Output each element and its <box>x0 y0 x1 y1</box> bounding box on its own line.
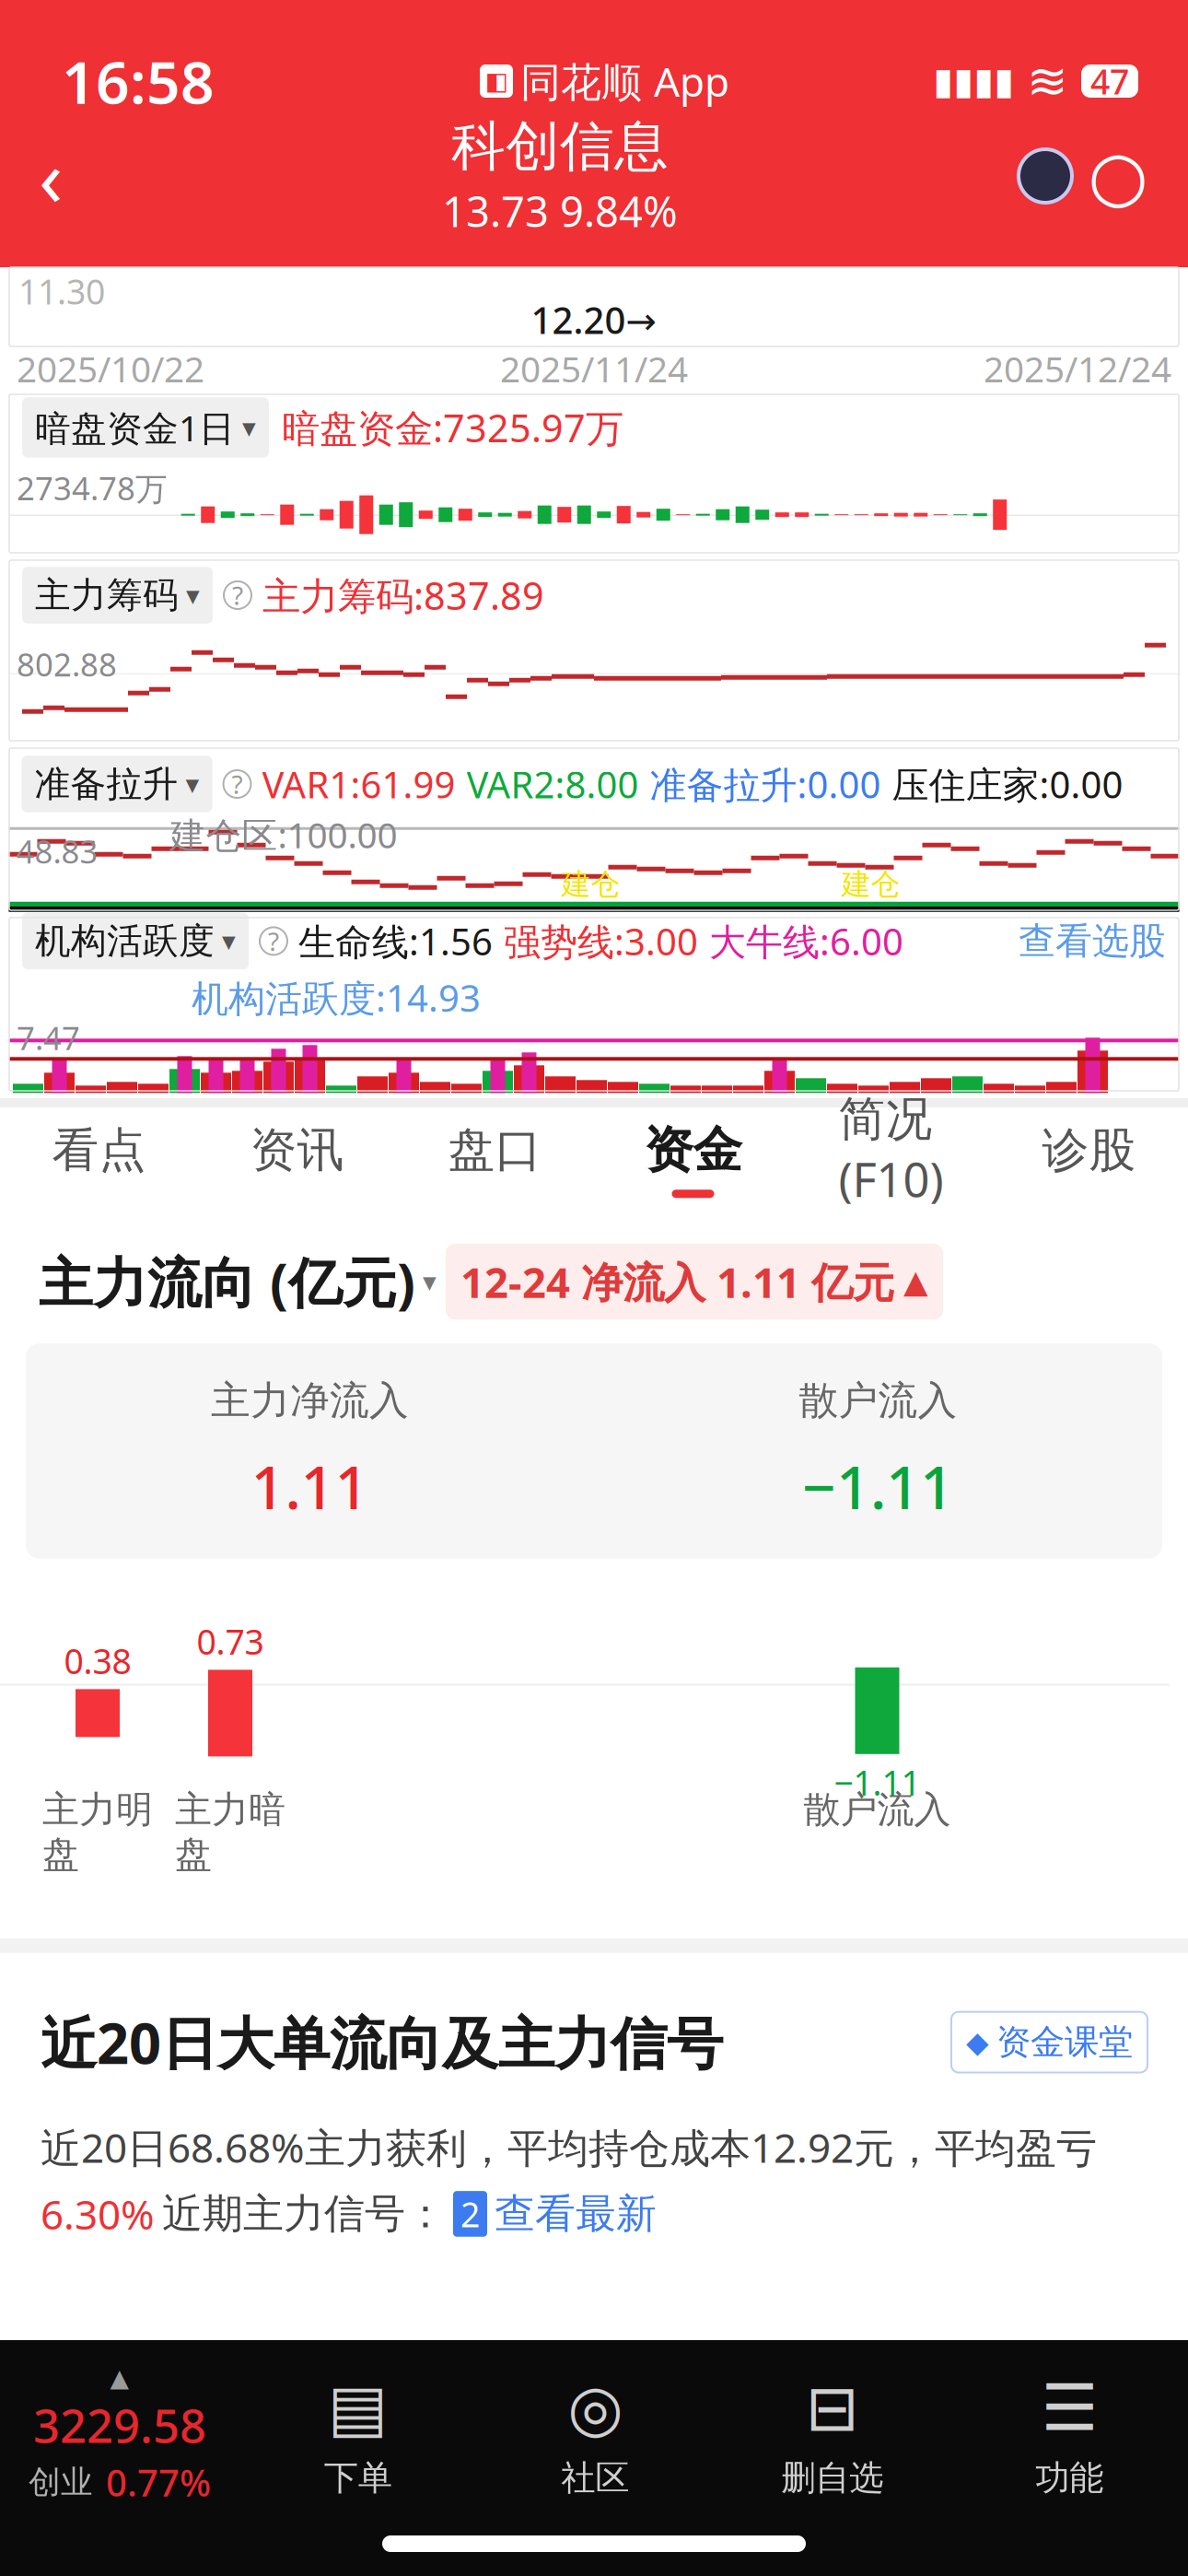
staticText: ‹ <box>39 124 63 228</box>
staticText: ▾ <box>186 769 199 799</box>
button[interactable]: Back <box>0 125 101 227</box>
staticText: 生命线:1.56 <box>298 917 493 966</box>
button[interactable]: 盘口 <box>396 1109 594 1209</box>
button[interactable]: 查看最新 <box>495 2189 657 2239</box>
button[interactable]: 主力流向 (亿元) <box>39 1246 437 1317</box>
staticText: 16:58 <box>62 42 215 120</box>
staticText: 11.30 <box>18 268 105 314</box>
button[interactable]: 暗盘资金1日 <box>22 397 269 458</box>
button[interactable]: Search <box>1072 130 1164 222</box>
staticText: ◧ <box>485 67 508 95</box>
staticText: 下单 <box>324 2457 392 2499</box>
staticText: 简况(F10) <box>839 1091 943 1210</box>
button[interactable]: 诊股 <box>990 1109 1188 1209</box>
staticText: 0.77% <box>106 2458 211 2507</box>
staticText: 建仓 <box>561 866 620 902</box>
staticText: 1.11 <box>251 1447 369 1525</box>
staticText: 盘口 <box>448 1122 542 1179</box>
button[interactable]: ☰ <box>951 2372 1188 2499</box>
staticText: 12-24 净流入 1.11 亿元 <box>460 1254 894 1309</box>
staticText: ◆ <box>966 2025 989 2059</box>
staticText: ○ <box>1088 137 1148 215</box>
staticText: ▲ <box>903 1263 928 1300</box>
staticText: 主力暗盘 <box>175 1787 285 1878</box>
staticText: 资讯 <box>250 1122 344 1179</box>
staticText: 近20日大单流向及主力信号 <box>41 2005 723 2080</box>
staticText: 删自选 <box>781 2457 883 2499</box>
staticText: 大牛线:6.00 <box>709 917 903 966</box>
staticText: 2025/12/24 <box>984 345 1171 392</box>
staticText: 近期主力信号： <box>162 2189 446 2239</box>
staticText: ? <box>232 767 243 801</box>
button[interactable]: Assistant <box>1019 149 1072 203</box>
staticText: 准备拉升 <box>35 762 178 806</box>
staticText: 主力流向 (亿元) <box>39 1246 415 1317</box>
staticText: 诊股 <box>1042 1122 1136 1179</box>
button[interactable]: 机构活跃度 <box>22 913 249 969</box>
staticText: 机构活跃度:14.93 <box>192 973 481 1022</box>
staticText: 查看选股 <box>1019 918 1166 964</box>
staticText: 散户流入 <box>799 1377 957 1425</box>
staticText: 48.83 <box>16 830 98 872</box>
staticText: 准备拉升:0.00 <box>650 760 881 808</box>
staticText: 查看最新 <box>495 2189 657 2239</box>
staticText: 建仓 <box>841 866 900 902</box>
staticText: ▾ <box>242 412 256 443</box>
staticText: 主力筹码 <box>35 573 179 617</box>
staticText: 13.73 9.84% <box>442 183 678 239</box>
staticText: 3229.58 <box>33 2394 206 2456</box>
staticText: ≋ <box>1027 53 1068 109</box>
staticText: 0.38 <box>64 1638 131 1684</box>
staticText: 主力明盘 <box>42 1787 153 1878</box>
staticText: 2 <box>460 2191 480 2237</box>
staticText: ? <box>268 924 279 958</box>
button[interactable]: 资金 <box>594 1107 792 1211</box>
staticText: 47 <box>1090 58 1129 104</box>
staticText: 暗盘资金:7325.97万 <box>282 402 623 453</box>
staticText: 2025/10/22 <box>17 345 204 392</box>
staticText: ▾ <box>186 580 200 611</box>
button[interactable]: 准备拉升 <box>22 756 212 812</box>
staticText: 科创信息 <box>451 113 669 180</box>
staticText: ▾ <box>423 1266 437 1297</box>
button[interactable]: ▤ <box>239 2372 477 2499</box>
button[interactable]: 资讯 <box>198 1109 396 1209</box>
staticText: ◎ <box>567 2372 623 2444</box>
staticText: 6.30% <box>41 2187 155 2241</box>
button[interactable]: ⊟ <box>714 2372 951 2499</box>
staticText: 机构活跃度 <box>35 919 215 963</box>
staticText: VAR1:61.99 <box>262 760 455 808</box>
button[interactable]: 12-24 净流入 1.11 亿元 <box>446 1244 943 1320</box>
staticText: ▮▮▮▮ <box>933 60 1014 102</box>
staticText: 散户流入 <box>804 1787 951 1832</box>
staticText: 2025/11/24 <box>500 345 688 392</box>
button[interactable]: 简况(F10) <box>792 1078 990 1240</box>
staticText: 802.88 <box>17 643 117 685</box>
staticText: 创业 <box>29 2462 93 2502</box>
button[interactable]: ◆ <box>951 2012 1147 2073</box>
staticText: 看点 <box>52 1122 146 1179</box>
staticText: ▲ <box>110 2364 129 2392</box>
staticText: −1.11 <box>834 1760 920 1805</box>
staticText: ? <box>232 578 243 612</box>
staticText: 0.73 <box>197 1619 264 1664</box>
staticText: 暗盘资金1日 <box>35 404 235 451</box>
button[interactable]: ◎ <box>477 2372 714 2499</box>
staticText: 主力筹码:837.89 <box>262 570 544 621</box>
staticText: 功能 <box>1035 2457 1103 2499</box>
staticText: 资金 <box>644 1120 742 1180</box>
staticText: 同花顺 App <box>520 54 729 108</box>
staticText: 12.20→ <box>531 295 657 344</box>
staticText: 压住庄家:0.00 <box>892 760 1123 808</box>
staticText: −1.11 <box>802 1447 954 1525</box>
staticText: 资金课堂 <box>996 2021 1133 2063</box>
button[interactable]: 主力筹码 <box>22 567 213 624</box>
staticText: ▾ <box>222 926 236 956</box>
button[interactable]: 查看选股 <box>1019 918 1166 964</box>
staticText: 2734.78万 <box>17 467 168 509</box>
staticText: ⊟ <box>806 2372 859 2444</box>
button[interactable]: 看点 <box>0 1109 198 1209</box>
staticText: ☰ <box>1041 2372 1098 2444</box>
staticText: 7.47 <box>17 1016 80 1059</box>
staticText: 强势线:3.00 <box>504 917 698 966</box>
